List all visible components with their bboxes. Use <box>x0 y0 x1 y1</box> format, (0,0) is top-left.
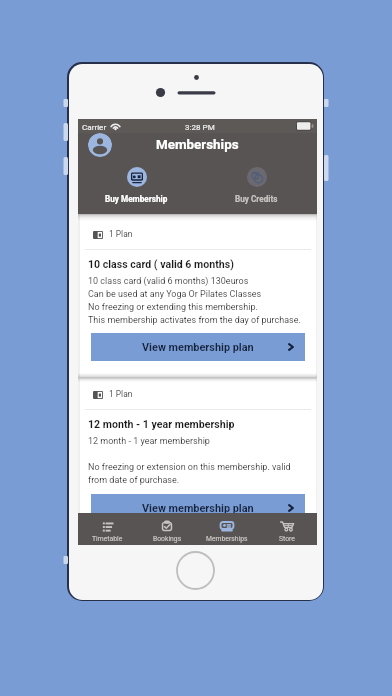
staticText: Memberships <box>156 137 239 153</box>
staticText: This membership activates from the day o… <box>88 315 301 326</box>
staticText: Timetable <box>92 535 123 543</box>
button[interactable]: Store <box>257 513 317 545</box>
button[interactable]: Profile <box>88 133 112 157</box>
button[interactable]: View membership plan <box>91 494 305 522</box>
button[interactable]: Buy Credits <box>214 167 298 207</box>
staticText: 12 month - 1 year membership <box>88 418 235 430</box>
staticText: Bookings <box>153 535 182 543</box>
staticText: Carrier <box>82 122 107 131</box>
staticText: 1 Plan <box>109 389 133 399</box>
staticText: 10 class card ( valid 6 months) <box>88 258 234 270</box>
staticText: from date of purchase. <box>88 475 180 486</box>
button[interactable]: Timetable <box>78 513 137 545</box>
staticText: Buy Credits <box>235 194 278 204</box>
staticText: Buy Membership <box>105 194 168 204</box>
staticText: 3:28 PM <box>185 122 215 131</box>
button[interactable]: Memberships <box>197 513 257 545</box>
staticText: View membership plan <box>142 341 254 354</box>
staticText: Store <box>279 535 295 543</box>
staticText: View membership plan <box>142 502 254 515</box>
button[interactable]: Bookings <box>137 513 197 545</box>
staticText: No freezing or extending this membership… <box>88 302 258 313</box>
staticText: 12 month - 1 year membership <box>88 436 210 447</box>
staticText: 1 Plan <box>109 229 133 239</box>
staticText: Can be used at any Yoga Or Pilates Class… <box>88 289 262 300</box>
button[interactable]: 1 Plan <box>80 215 316 377</box>
staticText: No freezing or extension on this members… <box>88 462 291 473</box>
staticText: Memberships <box>206 535 248 543</box>
button[interactable]: View membership plan <box>91 333 305 361</box>
button[interactable]: Buy Membership <box>94 167 178 207</box>
button[interactable]: 1 Plan <box>80 379 316 541</box>
staticText: 10 class card (valid 6 months) 130euros <box>88 276 249 287</box>
